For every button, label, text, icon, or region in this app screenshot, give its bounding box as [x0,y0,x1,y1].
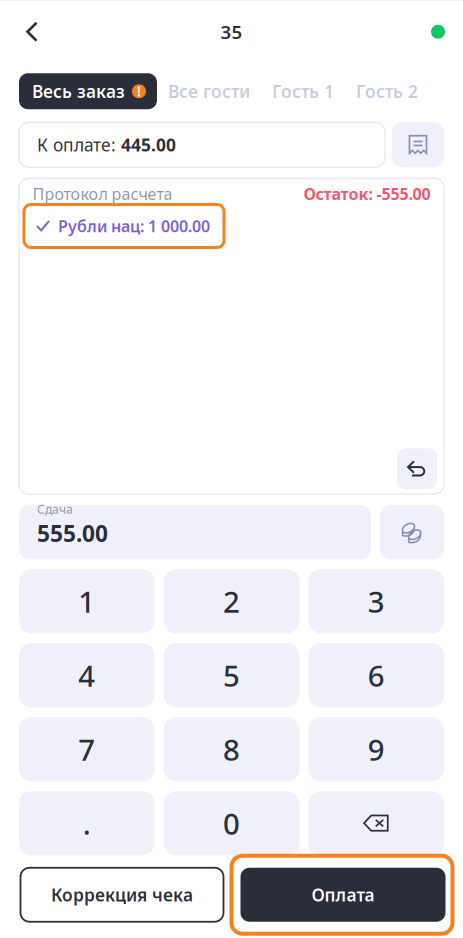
staticText: 35 [220,19,242,44]
staticText: К оплате: [37,133,121,156]
button[interactable]: 5 [164,643,299,707]
button[interactable]: . [19,791,154,855]
button[interactable]: Back [4,10,60,54]
button[interactable]: 0 [164,791,299,855]
staticText: 0 [223,804,240,843]
staticText: 445.00 [121,133,176,156]
button[interactable]: Delete [308,791,444,855]
staticText: 1 [78,582,95,621]
staticText: 4 [78,656,95,695]
staticText: 9 [368,730,385,769]
button[interactable]: 7 [19,717,154,781]
staticText: Сдача [37,501,73,517]
button[interactable]: Receipt [392,122,444,167]
button[interactable]: Гость 1 [261,74,345,109]
button[interactable]: Все гости [157,74,261,109]
staticText: Весь заказ [32,80,125,103]
staticText: 555.00 [37,518,108,548]
button[interactable]: 2 [164,569,299,633]
button[interactable]: 3 [308,569,444,633]
staticText: 3 [368,582,385,621]
staticText: 7 [78,730,95,769]
staticText: 8 [223,730,240,769]
button[interactable]: Гость 2 [345,74,429,109]
button[interactable]: 8 [164,717,299,781]
button[interactable]: Undo [397,448,437,489]
button[interactable]: Весь заказ [19,73,157,109]
staticText: Коррекция чека [51,883,193,906]
button[interactable]: 4 [19,643,154,707]
button[interactable]: 9 [308,717,444,781]
staticText: Оплата [311,883,374,906]
staticText: Протокол расчета [32,183,172,204]
button[interactable]: Connection status [417,10,459,54]
staticText: 5 [223,656,240,695]
button[interactable]: 1 [19,569,154,633]
button[interactable]: Coins [380,505,444,559]
staticText: 6 [368,656,385,695]
staticText: Гость 1 [272,80,334,103]
staticText: 2 [223,582,240,621]
button[interactable]: Оплата [231,856,452,934]
staticText: ! [137,82,141,100]
staticText: Остаток: -555.00 [303,183,430,204]
staticText: Гость 2 [356,80,418,103]
staticText: . [83,804,91,843]
button[interactable]: Коррекция чека [20,868,223,922]
button[interactable]: 6 [308,643,444,707]
staticText: Все гости [168,80,250,103]
staticText: Рубли нац: 1 000.00 [58,215,210,237]
